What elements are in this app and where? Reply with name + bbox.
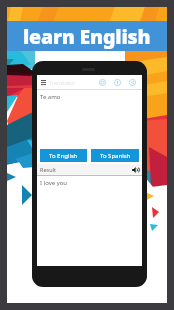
- staticText: Result: [40, 166, 56, 173]
- button[interactable]: Speak: [130, 164, 141, 175]
- staticText: Te amo: [40, 93, 61, 101]
- staticText: To English: [49, 152, 78, 160]
- button[interactable]: To Spanish: [91, 149, 139, 162]
- staticText: To Spanish: [100, 152, 131, 160]
- button[interactable]: To English: [40, 149, 87, 162]
- button[interactable]: Share: [125, 75, 140, 89]
- button[interactable]: History: [95, 75, 110, 89]
- staticText: learn English: [23, 23, 151, 50]
- button[interactable]: Menu: [37, 75, 49, 89]
- staticText: I love you: [40, 179, 68, 187]
- staticText: Translator: [49, 79, 76, 86]
- button[interactable]: Voice: [110, 75, 125, 89]
